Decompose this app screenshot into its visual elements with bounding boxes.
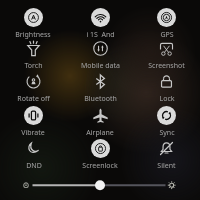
button[interactable]: Brightness slider (0, 0, 200, 200)
staticText: Screenlock (82, 161, 118, 171)
staticText: Vibrate (21, 128, 45, 138)
staticText: Torch (24, 61, 43, 71)
staticText: Brightness (15, 30, 51, 40)
button[interactable]: Sync (134, 106, 198, 136)
staticText: Airplane (86, 128, 114, 138)
staticText: Mobile data (81, 61, 120, 71)
staticText: DND (26, 161, 42, 171)
button[interactable]: Screenlock (68, 139, 132, 169)
staticText: Silent (157, 161, 176, 171)
staticText: Rotate off (17, 94, 50, 104)
staticText: GPS (160, 30, 174, 40)
staticText: Bluetooth (84, 94, 117, 104)
button[interactable]: Lock (134, 72, 198, 102)
button[interactable]: Torch (1, 39, 65, 69)
staticText: i 1S And (86, 30, 115, 40)
button[interactable]: i 1S And (68, 8, 132, 38)
button[interactable]: Silent (134, 139, 198, 169)
button[interactable]: DND (1, 139, 65, 169)
button[interactable]: Airplane (68, 106, 132, 136)
button[interactable]: Brightness (1, 8, 65, 38)
button[interactable]: Screenshot (134, 39, 198, 69)
button[interactable]: Mobile data (68, 39, 132, 69)
staticText: Sync (159, 128, 175, 138)
button[interactable]: Vibrate (1, 106, 65, 136)
staticText: Screenshot (148, 61, 185, 71)
staticText: Lock (159, 94, 175, 104)
button[interactable]: GPS (134, 8, 198, 38)
button[interactable]: Bluetooth (68, 72, 132, 102)
button[interactable]: Rotate off (1, 72, 65, 102)
